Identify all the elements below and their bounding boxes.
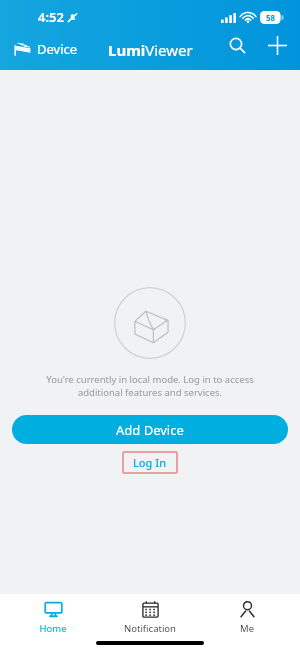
button[interactable]: Add xyxy=(260,28,294,62)
button[interactable]: Device xyxy=(0,36,86,62)
staticText: 4:52 xyxy=(38,8,64,26)
button[interactable]: Log In xyxy=(122,451,178,474)
staticText: Me xyxy=(240,622,254,635)
staticText: Notification xyxy=(124,622,176,635)
button[interactable]: Notification xyxy=(106,598,194,637)
staticText: Home xyxy=(39,622,67,635)
button[interactable]: Me xyxy=(203,598,291,637)
button[interactable]: Add Device xyxy=(12,415,288,444)
staticText: Log In xyxy=(133,455,167,470)
staticText: You're currently in local mode. Log in t… xyxy=(34,373,266,399)
staticText: 58 xyxy=(266,12,276,23)
button[interactable]: Home xyxy=(9,598,97,637)
staticText: Add Device xyxy=(116,421,184,439)
button[interactable]: Search xyxy=(220,28,254,62)
staticText: LumiViewer xyxy=(108,40,193,60)
staticText: Device xyxy=(37,40,78,58)
